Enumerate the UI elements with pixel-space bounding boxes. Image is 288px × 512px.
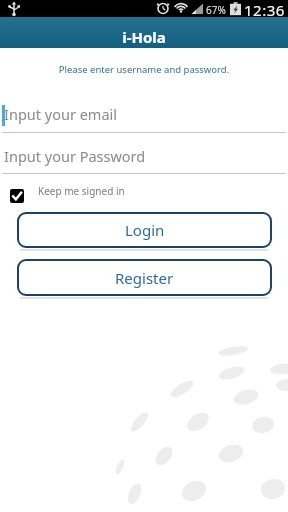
staticText: Input your email [4,104,117,124]
staticText: Login [125,220,165,240]
button[interactable]: Login [17,212,272,248]
staticText: Register [115,268,174,288]
button[interactable]: Register [17,259,272,296]
staticText: i-Hola [0,27,288,47]
button[interactable]: Keep me signed in [0,183,288,209]
staticText: 67% [206,3,226,17]
button[interactable]: Input your email [0,93,288,133]
staticText: Keep me signed in [38,184,125,198]
staticText: Please enter username and password. [0,63,288,76]
button[interactable]: Input your Password [0,134,288,174]
staticText: Input your Password [4,146,146,166]
staticText: 12:36 [244,0,285,17]
